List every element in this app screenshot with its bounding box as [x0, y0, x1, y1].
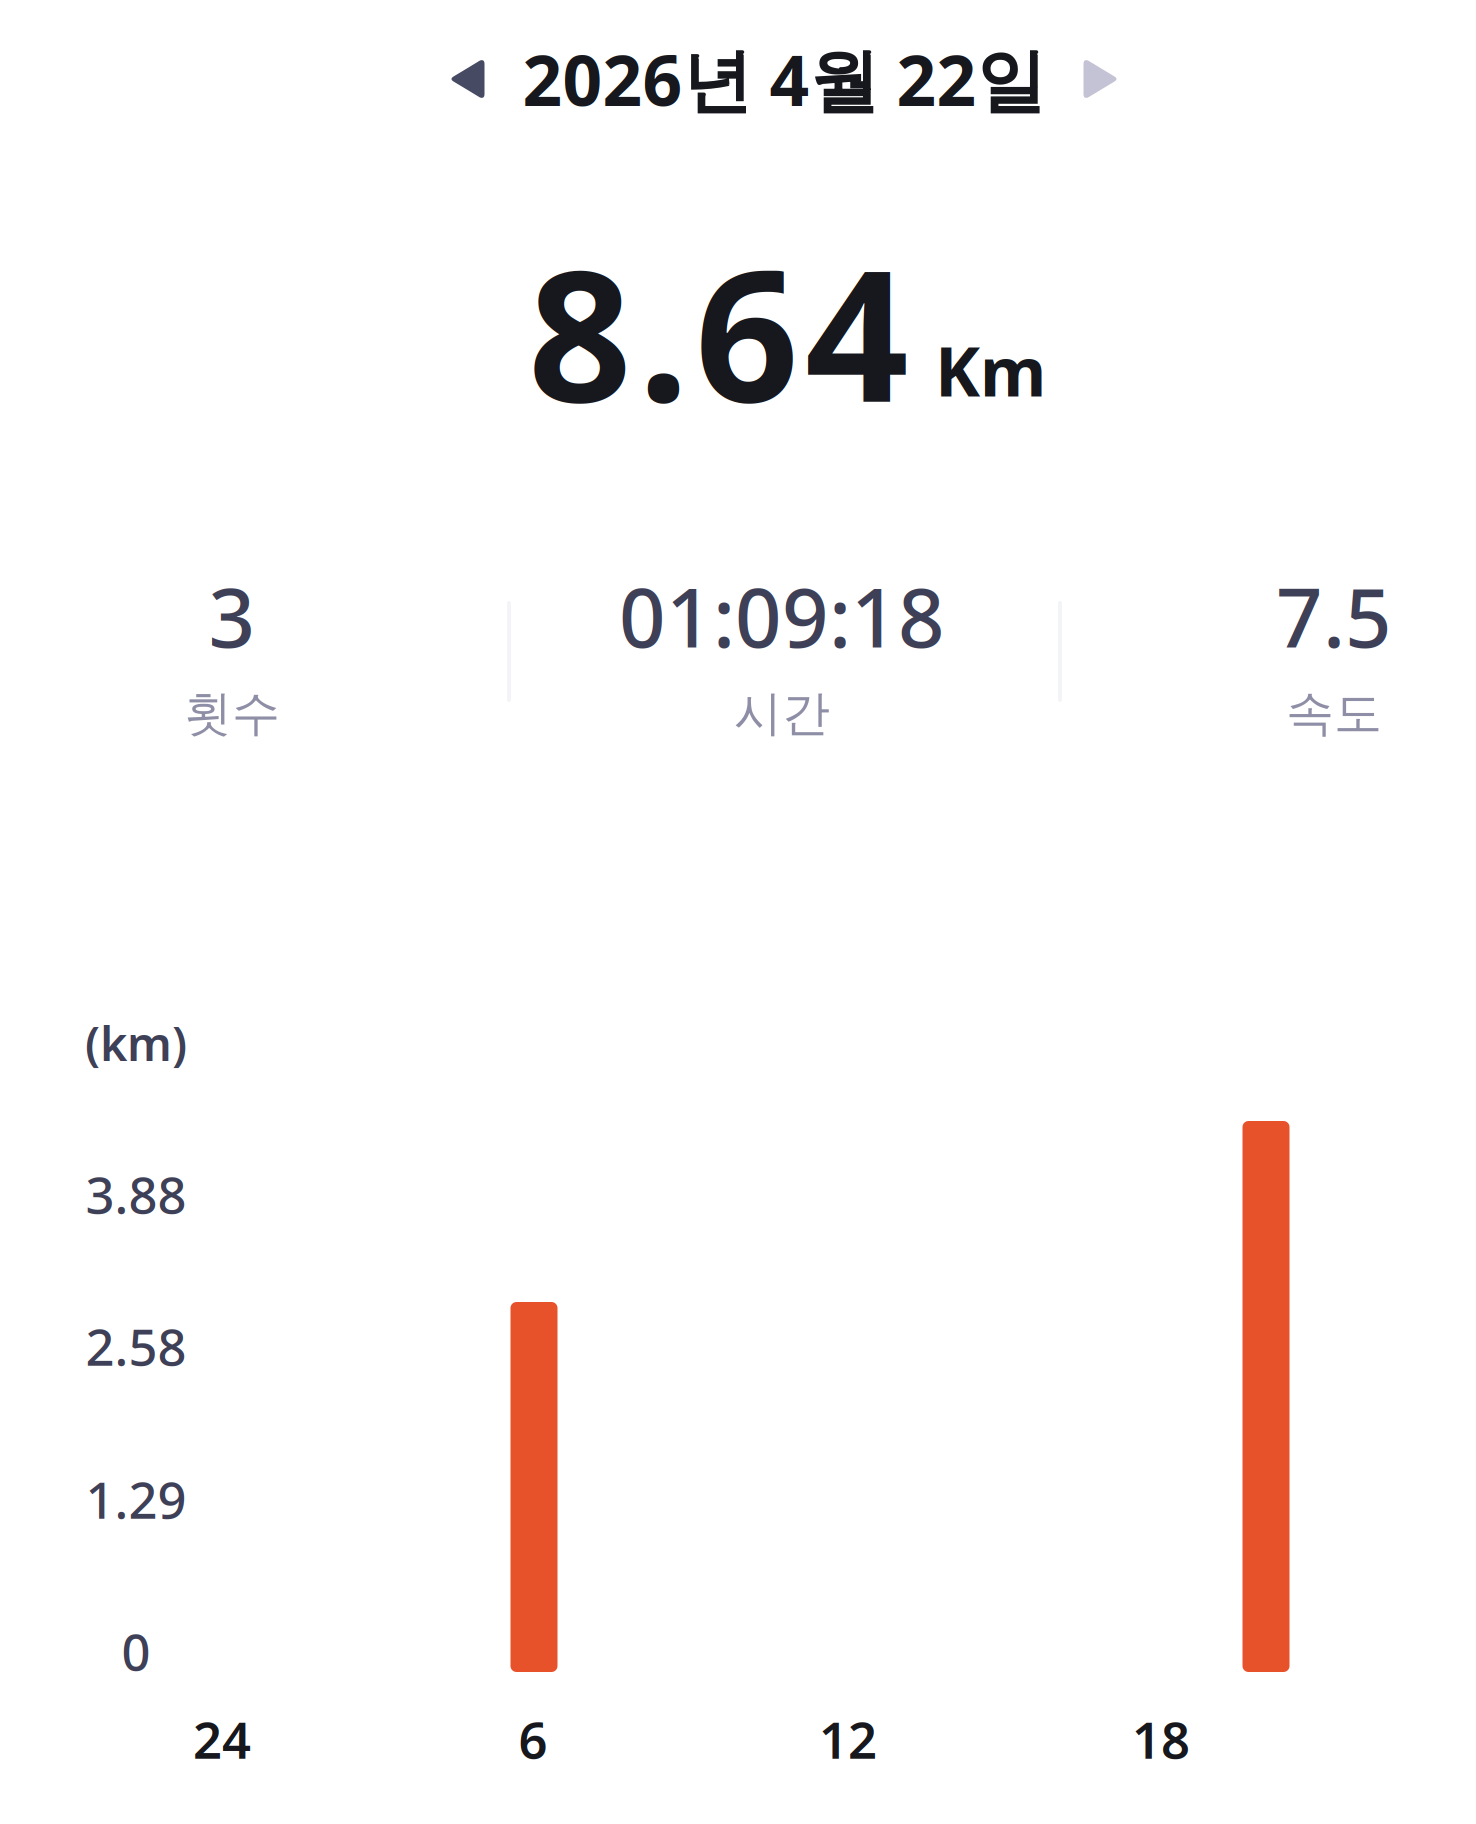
staticText: 01:09:18 — [619, 562, 945, 670]
staticText: 3 — [208, 562, 255, 670]
button[interactable]: Previous day — [409, 39, 484, 119]
staticText: 횟수 — [184, 684, 280, 743]
staticText: 7.5 — [1276, 562, 1392, 670]
staticText: 0 — [121, 1617, 150, 1685]
staticText: 24 — [193, 1705, 251, 1773]
staticText: 6 — [518, 1705, 547, 1773]
staticText: 8.64 — [528, 211, 909, 452]
staticText: 속도 — [1286, 684, 1382, 743]
staticText: 시간 — [734, 684, 830, 743]
staticText: 3.88 — [85, 1160, 186, 1228]
staticText: 12 — [819, 1705, 877, 1773]
staticText: 2026년 4월 22일 — [522, 33, 1045, 125]
staticText: 1.29 — [85, 1465, 186, 1533]
staticText: (km) — [85, 1012, 187, 1074]
button[interactable]: Next day — [1083, 39, 1158, 119]
staticText: 18 — [1132, 1705, 1190, 1773]
staticText: Km — [935, 325, 1046, 415]
staticText: 2.58 — [85, 1312, 186, 1380]
